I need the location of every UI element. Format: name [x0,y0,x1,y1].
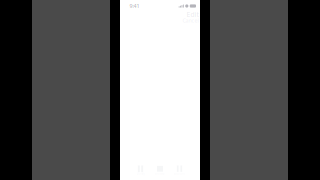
staticText: Edit [186,10,198,19]
staticText: 9:41 [129,2,139,10]
button[interactable]: Edit [186,10,198,19]
